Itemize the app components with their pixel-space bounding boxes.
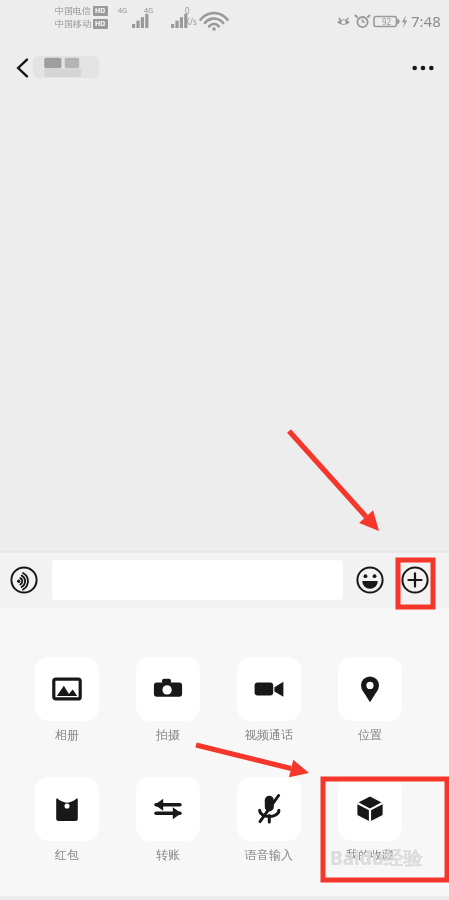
button[interactable]: More functions — [395, 560, 435, 600]
staticText: Baidu经验 — [330, 845, 423, 871]
staticText: 中国移动 — [55, 18, 91, 29]
staticText: 中国电信 — [55, 5, 91, 16]
staticText: 0 — [185, 5, 190, 16]
button[interactable]: 语音输入 — [237, 777, 301, 862]
button[interactable]: 相册 — [35, 657, 99, 742]
staticText: HD — [95, 6, 106, 16]
staticText: HD — [95, 19, 106, 29]
staticText: 4G — [144, 6, 154, 16]
staticText: 转账 — [156, 847, 180, 862]
button[interactable]: 位置 — [338, 657, 402, 742]
button[interactable]: Emoji — [350, 560, 390, 600]
staticText: 红包 — [55, 847, 79, 862]
button[interactable]: 视频通话 — [237, 657, 301, 742]
button[interactable]: 转账 — [136, 777, 200, 862]
staticText: 拍摄 — [156, 727, 180, 742]
staticText: 7:48 — [411, 11, 441, 31]
staticText: 位置 — [358, 727, 382, 742]
staticText: 4G — [118, 6, 128, 16]
button[interactable]: Back — [0, 45, 46, 91]
staticText: K/s — [185, 16, 197, 27]
button[interactable]: 红包 — [35, 777, 99, 862]
button[interactable]: More options — [397, 42, 449, 94]
staticText: 相册 — [55, 727, 79, 742]
button[interactable]: Voice input — [4, 560, 44, 600]
staticText: 视频通话 — [245, 727, 293, 742]
staticText: 我的收藏 — [346, 847, 394, 862]
staticText: 语音输入 — [245, 847, 293, 862]
button[interactable]: 拍摄 — [136, 657, 200, 742]
button[interactable]: 我的收藏 — [338, 777, 402, 862]
staticText: 92 — [382, 16, 392, 27]
